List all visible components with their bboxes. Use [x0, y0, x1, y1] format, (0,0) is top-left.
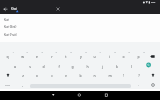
button[interactable]: 4	[54, 51, 57, 54]
staticText: b	[79, 73, 82, 78]
button[interactable]: ,	[15, 79, 30, 89]
staticText: ?123	[5, 84, 10, 87]
button[interactable]: y	[73, 51, 88, 61]
staticText: i	[109, 54, 110, 59]
staticText: Kiwi	[4, 18, 9, 22]
button[interactable]: k	[109, 61, 124, 71]
staticText: x	[36, 73, 38, 78]
staticText: 1	[12, 51, 14, 54]
button[interactable]: ?	[131, 70, 146, 80]
button[interactable]: ?123	[0, 80, 15, 90]
button[interactable]: 7	[98, 51, 101, 54]
button[interactable]: Kiwi (Bird)	[0, 22, 160, 30]
button[interactable]: o	[116, 51, 131, 61]
staticText: c	[51, 73, 53, 78]
button[interactable]: e	[29, 51, 44, 61]
button[interactable]: f	[51, 61, 66, 71]
button[interactable]: Emoji	[145, 80, 160, 90]
staticText: !	[123, 73, 124, 78]
staticText: h	[86, 64, 89, 69]
staticText: Kiwi	[11, 7, 17, 11]
staticText: 3	[41, 51, 43, 54]
staticText: f	[58, 64, 60, 69]
button[interactable]: l	[124, 61, 139, 71]
button[interactable]: 6	[84, 51, 87, 54]
staticText: d	[42, 64, 45, 69]
button[interactable]: x	[29, 70, 44, 80]
staticText: j	[102, 64, 103, 69]
button[interactable]: Recent apps	[101, 91, 112, 100]
staticText: a	[14, 64, 16, 69]
button[interactable]: u	[87, 51, 102, 61]
button[interactable]: 9	[127, 51, 130, 54]
button[interactable]: q	[0, 51, 15, 61]
staticText: 8	[114, 51, 116, 54]
button[interactable]: 0	[142, 51, 145, 54]
button[interactable]: t	[58, 51, 73, 61]
button[interactable]: 1	[11, 51, 14, 54]
staticText: 9	[128, 51, 130, 54]
button[interactable]: Kiwi (Fruit)	[0, 30, 160, 38]
staticText: z	[22, 73, 24, 78]
button[interactable]: Hide keyboard	[48, 91, 59, 100]
staticText: e	[36, 54, 38, 59]
button[interactable]: Search	[138, 60, 160, 70]
button[interactable]: s	[22, 61, 37, 71]
button[interactable]: b	[73, 70, 88, 80]
button[interactable]: n	[87, 70, 102, 80]
button[interactable]: Shift	[0, 70, 15, 80]
button[interactable]: c	[44, 70, 59, 80]
button[interactable]: 8	[113, 51, 116, 54]
staticText: 0	[143, 51, 145, 54]
button[interactable]: Backspace	[145, 51, 160, 61]
staticText: 4:05	[151, 1, 156, 4]
button[interactable]: Back	[1, 5, 10, 13]
button[interactable]: v	[58, 70, 73, 80]
button[interactable]: Clear query	[54, 5, 62, 13]
button[interactable]: Shift	[145, 70, 160, 80]
staticText: w	[21, 54, 24, 59]
button[interactable]: w	[15, 51, 30, 61]
staticText: 6	[85, 51, 87, 54]
button[interactable]: Kiwi	[0, 15, 160, 23]
staticText: n	[93, 73, 96, 78]
staticText: 5	[70, 51, 72, 54]
staticText: q	[6, 54, 9, 59]
button[interactable]: g	[65, 61, 80, 71]
button[interactable]: m	[102, 70, 117, 80]
staticText: ?	[138, 73, 140, 78]
staticText: k	[116, 64, 118, 69]
button[interactable]: p	[131, 51, 146, 61]
staticText: v	[65, 73, 67, 78]
staticText: g	[71, 64, 74, 69]
staticText: o	[122, 54, 125, 59]
staticText: 2	[26, 51, 28, 54]
staticText: Kiwi (Fruit)	[4, 33, 17, 37]
button[interactable]: d	[36, 61, 51, 71]
staticText: 4	[55, 51, 57, 54]
staticText: y	[80, 54, 82, 59]
button[interactable]: Home	[74, 91, 85, 100]
staticText: Kiwi (Bird)	[4, 25, 17, 29]
button[interactable]: i	[102, 51, 117, 61]
button[interactable]: r	[44, 51, 59, 61]
staticText: u	[93, 54, 96, 59]
staticText: p	[137, 54, 140, 59]
staticText: ,	[22, 82, 23, 87]
staticText: t	[65, 54, 67, 59]
button[interactable]: z	[15, 70, 30, 80]
staticText: s	[29, 64, 31, 69]
button[interactable]: !	[116, 70, 131, 80]
button[interactable]: j	[95, 61, 110, 71]
staticText: 7	[99, 51, 101, 54]
button[interactable]: h	[80, 61, 95, 71]
button[interactable]: a	[7, 61, 22, 71]
button[interactable]: 2	[25, 51, 28, 54]
staticText: r	[51, 54, 53, 59]
staticText: .	[138, 82, 139, 87]
button[interactable]: 5	[69, 51, 72, 54]
staticText: l	[131, 64, 132, 69]
button[interactable]: 3	[40, 51, 43, 54]
